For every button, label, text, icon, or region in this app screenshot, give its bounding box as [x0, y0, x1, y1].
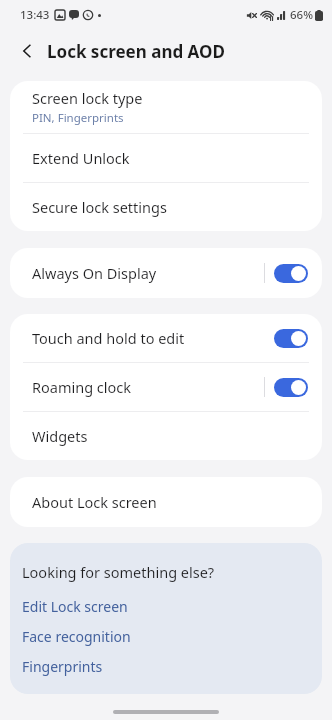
staticText: Edit Lock screen: [22, 597, 128, 616]
button[interactable]: Toggle on: [274, 329, 308, 348]
button[interactable]: Fingerprints: [10, 651, 322, 681]
staticText: Face recognition: [22, 627, 131, 646]
button[interactable]: Edit Lock screen: [10, 591, 322, 621]
staticText: PIN, Fingerprints: [32, 110, 124, 126]
button[interactable]: Always On Display: [10, 248, 322, 298]
button[interactable]: Back: [10, 34, 44, 68]
staticText: Fingerprints: [22, 657, 103, 676]
button[interactable]: Toggle on: [274, 264, 308, 283]
button[interactable]: Screen lock type: [10, 81, 322, 133]
button[interactable]: Extend Unlock: [10, 134, 322, 182]
staticText: 13:43: [20, 7, 50, 23]
staticText: Roaming clock: [32, 377, 132, 397]
button[interactable]: Toggle on: [274, 378, 308, 397]
button[interactable]: Roaming clock: [10, 363, 322, 411]
staticText: Always On Display: [32, 263, 157, 283]
staticText: Extend Unlock: [32, 148, 130, 168]
staticText: 66%: [290, 7, 313, 23]
staticText: Touch and hold to edit: [32, 328, 185, 348]
button[interactable]: Secure lock settings: [10, 183, 322, 231]
staticText: About Lock screen: [32, 492, 157, 512]
button[interactable]: Touch and hold to edit: [10, 314, 322, 362]
staticText: Secure lock settings: [32, 197, 167, 217]
button[interactable]: Widgets: [10, 412, 322, 460]
staticText: Widgets: [32, 426, 88, 446]
staticText: Screen lock type: [32, 88, 143, 108]
button[interactable]: About Lock screen: [10, 477, 322, 527]
staticText: Looking for something else?: [22, 562, 215, 582]
staticText: Lock screen and AOD: [47, 40, 225, 63]
button[interactable]: Face recognition: [10, 621, 322, 651]
